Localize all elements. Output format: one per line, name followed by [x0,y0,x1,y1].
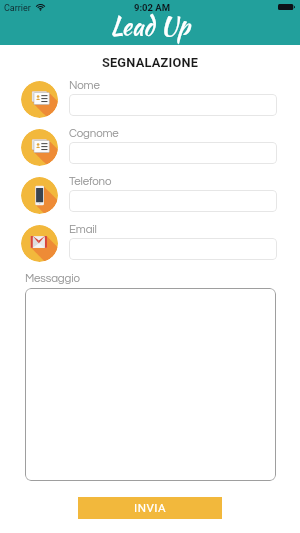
other: Battery [278,4,295,10]
staticText: Nome [69,80,100,92]
button[interactable] [69,94,277,116]
staticText: Cognome [69,128,119,140]
button[interactable] [69,142,277,164]
staticText: 9:02 AM [2,2,300,13]
staticText: Messaggio [25,273,80,285]
other: Wi-Fi [36,4,45,11]
button[interactable] [69,238,277,260]
staticText: Telefono [69,176,112,188]
staticText: Lead Up [110,8,190,44]
button[interactable]: INVIA [78,497,222,519]
button[interactable]: Email [21,225,58,262]
staticText: Email [69,224,97,236]
button[interactable] [69,190,277,212]
button[interactable] [25,288,276,481]
staticText: SEGNALAZIONE [0,55,300,70]
staticText: INVIA [134,501,167,515]
button[interactable]: Telefono [21,177,58,214]
button[interactable]: Nome [21,81,58,118]
staticText: Carrier [4,3,31,14]
button[interactable]: Cognome [21,129,58,166]
